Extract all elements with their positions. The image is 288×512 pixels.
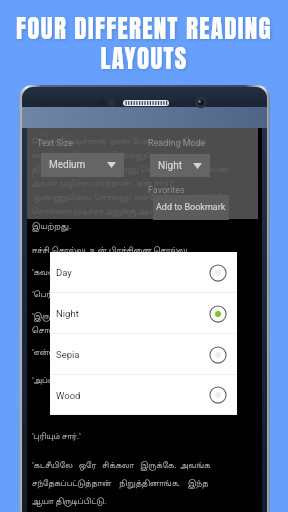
staticText: Favorites xyxy=(148,185,185,196)
staticText: ஆயா திருடிப்பிட்டு. xyxy=(32,497,107,506)
button[interactable]: Night xyxy=(150,154,210,177)
staticText: Night xyxy=(56,308,79,319)
staticText: 'கவலைப்படாதீங்க. நான் பார்த்துக்கறேன்.' xyxy=(32,268,199,277)
staticText: LAYOUTS xyxy=(0,40,288,78)
staticText: Text Size xyxy=(37,138,74,149)
button[interactable]: Add to Bookmark xyxy=(153,195,229,220)
button[interactable]: Day xyxy=(50,252,237,293)
staticText: ஈச்சி சொல்லு. உன் பிரச்சினை சொல்லு. xyxy=(32,246,190,255)
staticText: 'என்னால ஒண்ணும் பண்ண முடியல சார்.' xyxy=(32,348,197,357)
staticText: 'பெரிய கஷ்டம் சார்.' xyxy=(32,290,112,299)
staticText: Day xyxy=(56,267,72,278)
button[interactable]: Sepia xyxy=(50,334,237,375)
button[interactable]: Night xyxy=(50,293,237,334)
staticText: 'புரியும் சார்.' xyxy=(32,432,81,441)
staticText: 'ஒண்ணுமில்ல. சொல்லு.' என்றேன். அவன் விட்… xyxy=(32,193,228,202)
staticText: சொல்லி முடிச்சான். நான் பேனாவை எடுத்து xyxy=(32,137,204,146)
staticText: Add to Bookmark xyxy=(156,202,226,213)
staticText: கையில் எடுத்தேன். 'சொல்லுப்பா.' அது xyxy=(32,151,185,160)
button[interactable]: Medium xyxy=(41,153,124,177)
button[interactable]: Wood xyxy=(50,375,237,415)
staticText: சொன்னா முடிச்சா அதுக்கு அப்புறம் எப்படி xyxy=(32,207,198,216)
staticText: இயற்றது. xyxy=(32,222,71,231)
staticText: Wood xyxy=(56,390,81,401)
staticText: அவன் முழிச்சு பார்த்தான். 'ஏன் சார்?' xyxy=(32,179,175,188)
staticText: Reading Mode xyxy=(148,138,206,149)
staticText: Medium xyxy=(49,159,86,171)
staticText: 'இருந்தாலும் பரவாயில்லை. உங்களால முடிஞ்ச… xyxy=(32,312,223,321)
staticText: சந்தேகப்பட்டுத்தான் நிறுத்தினாங்க. இந்த xyxy=(32,479,209,488)
staticText: Sepia xyxy=(56,349,80,360)
staticText: Night xyxy=(158,160,182,172)
staticText: 'அப்படி சொல்லக்கூடாது. சொல்லுங்க.' xyxy=(32,376,184,385)
staticText: 'கடசீயிலே ஒரே சிக்கலா இருக்கே. அவங்க xyxy=(32,461,211,470)
staticText: சொல்லுங்க.' என்றேன் நான். xyxy=(32,326,146,335)
staticText: திடுக்கு ஆவலையா ஒன்னு கெட்டவனான பையன். xyxy=(32,165,230,174)
staticText: FOUR DIFFERENT READING xyxy=(0,10,288,48)
